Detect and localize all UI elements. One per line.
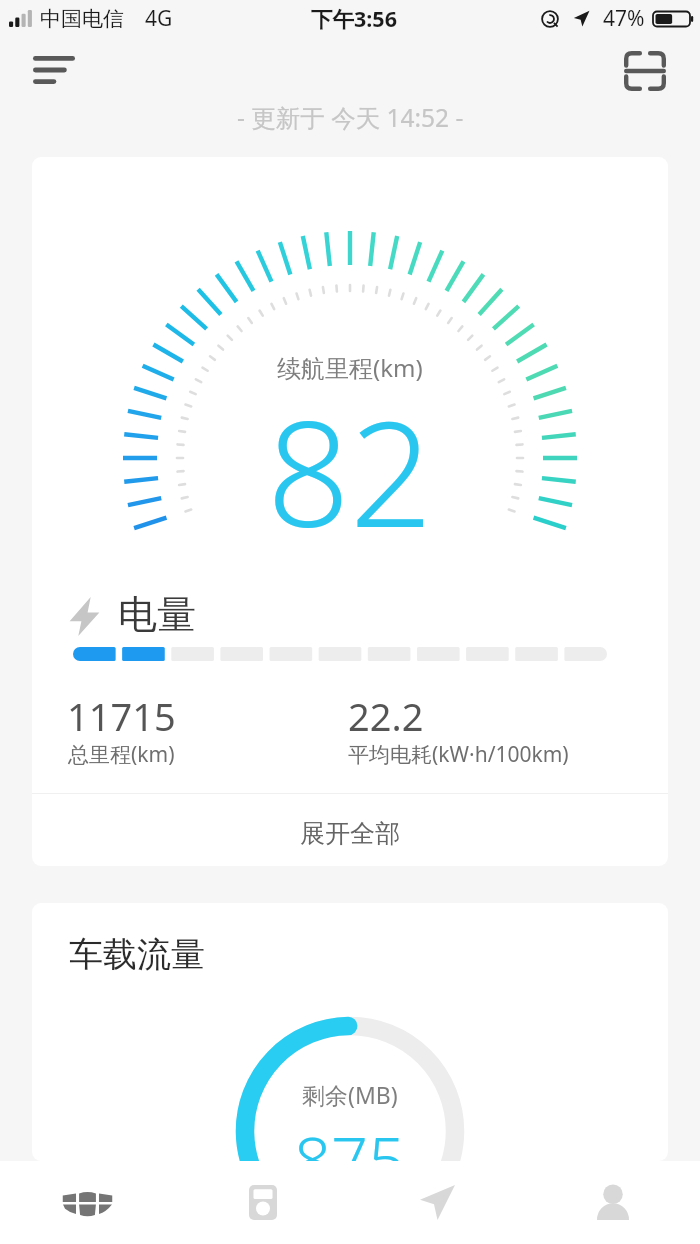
button[interactable]: Navigation bbox=[350, 1161, 525, 1244]
button[interactable]: Profile bbox=[525, 1161, 700, 1244]
staticText: 续航里程(km) bbox=[277, 351, 423, 384]
staticText: 总里程(km) bbox=[68, 740, 175, 769]
button[interactable]: Vehicle bbox=[0, 1161, 175, 1244]
staticText: 展开全部 bbox=[300, 818, 400, 849]
staticText: 下午3:56 bbox=[311, 4, 397, 33]
staticText: 82 bbox=[267, 372, 433, 569]
staticText: 剩余(MB) bbox=[302, 1079, 398, 1110]
staticText: 22.2 bbox=[348, 690, 424, 742]
staticText: 车载流量 bbox=[69, 933, 205, 976]
staticText: 中国电信 bbox=[40, 6, 124, 32]
staticText: 47% bbox=[603, 4, 645, 33]
staticText: 875 bbox=[294, 1115, 406, 1161]
staticText: 11715 bbox=[67, 690, 176, 742]
button[interactable]: Control bbox=[175, 1161, 350, 1244]
staticText: 电量 bbox=[118, 590, 196, 639]
button[interactable]: Scan bbox=[616, 43, 674, 99]
button[interactable]: Menu bbox=[18, 42, 90, 98]
staticText: 平均电耗(kW·h/100km) bbox=[348, 740, 569, 769]
button[interactable]: 展开全部 bbox=[32, 793, 668, 866]
staticText: 4G bbox=[145, 4, 173, 33]
staticText: - 更新于 今天 14:52 - bbox=[237, 101, 464, 131]
